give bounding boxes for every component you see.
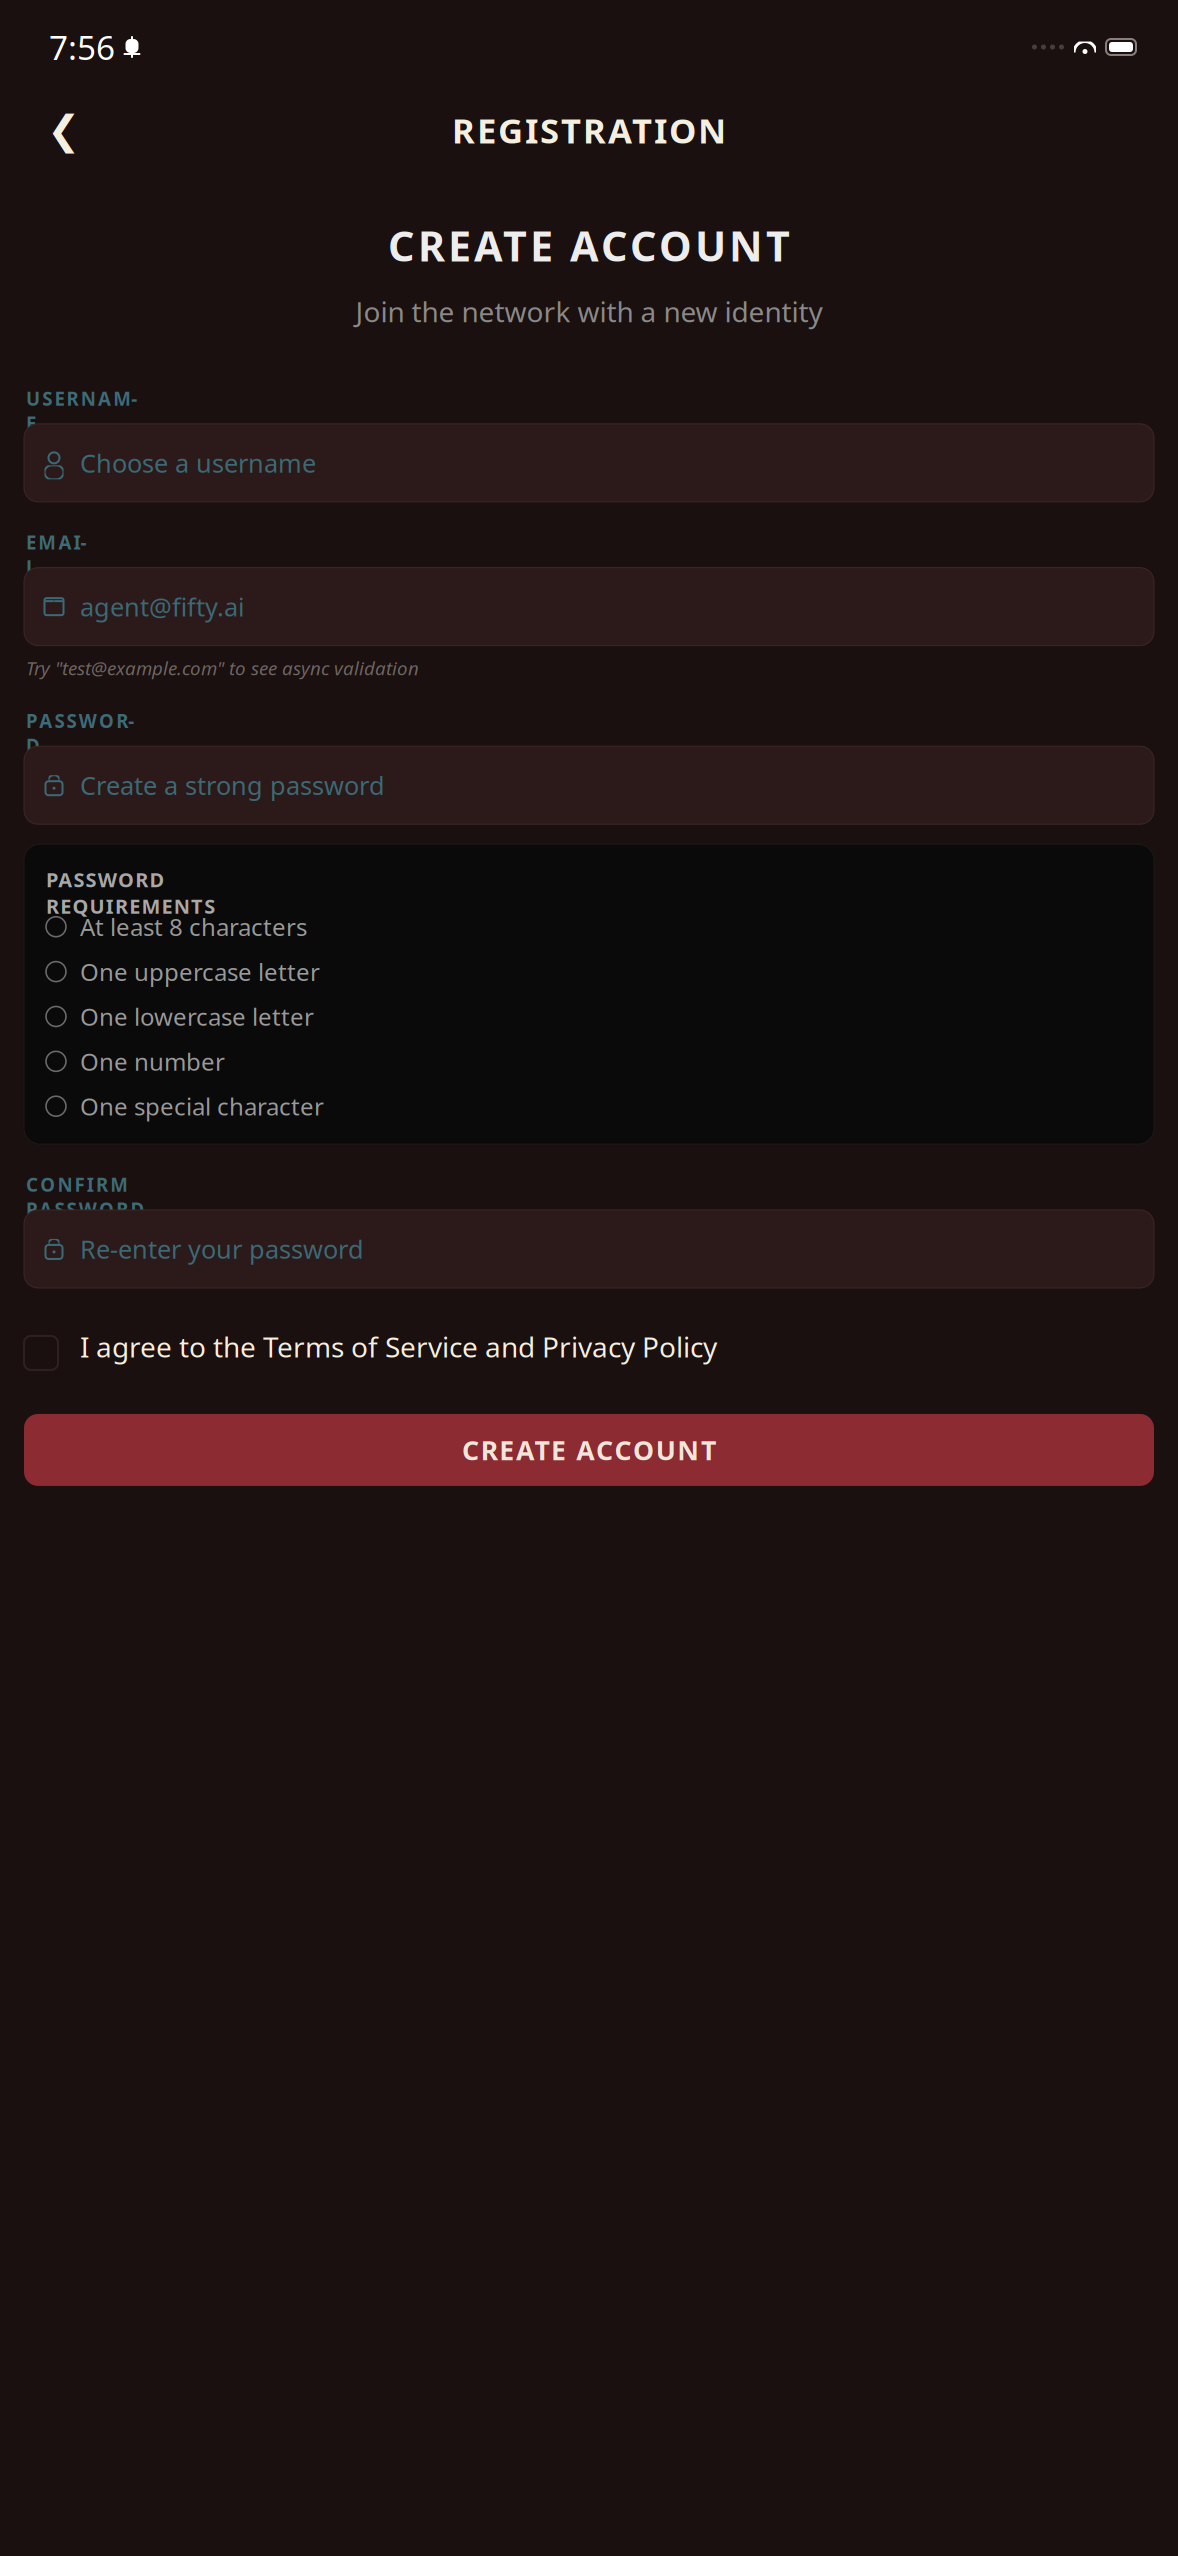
button[interactable]: Re-enter your password xyxy=(24,1210,1154,1288)
staticText: Re-enter your password xyxy=(80,1232,364,1266)
staticText: PASSWORD REQUIREMENTS xyxy=(46,866,341,893)
staticText: At least 8 characters xyxy=(80,911,307,943)
staticText: CREATE ACCOUNT xyxy=(388,218,790,273)
staticText: Create a strong password xyxy=(80,768,385,802)
button[interactable]: CREATE ACCOUNT xyxy=(24,1414,1154,1486)
button[interactable]: Create a strong password xyxy=(24,746,1154,824)
button[interactable]: Choose a username xyxy=(24,424,1154,502)
staticText: CREATE ACCOUNT xyxy=(462,1432,716,1468)
staticText: ❮ xyxy=(47,107,81,153)
staticText: CONFIRM PASSWORD xyxy=(26,1172,256,1197)
staticText: 7:56 xyxy=(49,25,115,69)
staticText: Try "test@example.com" to see async vali… xyxy=(26,656,419,680)
staticText: REGISTRATION xyxy=(452,107,726,153)
staticText: One special character xyxy=(80,1090,324,1122)
staticText: USERNAME xyxy=(26,386,143,411)
staticText: PASSWORD xyxy=(26,708,144,733)
staticText: Join the network with a new identity xyxy=(355,293,822,330)
staticText: I agree to the Terms of Service and Priv… xyxy=(80,1328,717,1365)
staticText: EMAIL xyxy=(26,530,93,555)
button[interactable]: I agree to the Terms of Service and Priv… xyxy=(24,1328,1154,1370)
staticText: One lowercase letter xyxy=(80,1000,314,1032)
staticText: One uppercase letter xyxy=(80,956,320,988)
button[interactable]: Back xyxy=(40,106,88,154)
staticText: Choose a username xyxy=(80,446,316,480)
staticText: agent@fifty.ai xyxy=(80,590,245,623)
staticText: One number xyxy=(80,1045,225,1077)
button[interactable]: agent@fifty.ai xyxy=(24,568,1154,646)
